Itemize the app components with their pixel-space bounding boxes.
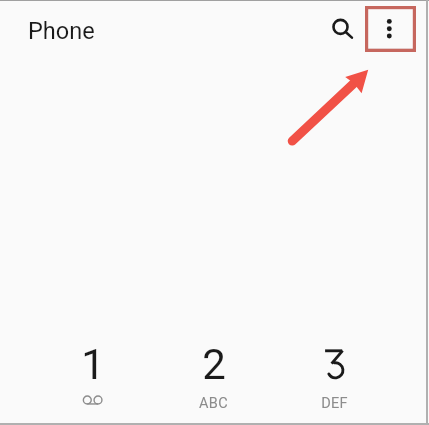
- button[interactable]: More options: [365, 6, 416, 52]
- button[interactable]: Phone: [22, 10, 100, 52]
- other: 3: [323, 340, 347, 389]
- button[interactable]: 1 voicemail: [32, 340, 153, 425]
- staticText: ABC: [199, 395, 228, 412]
- button[interactable]: 2: [153, 340, 274, 425]
- button[interactable]: 3: [274, 340, 395, 425]
- staticText: Phone: [28, 17, 95, 45]
- staticText: 2: [202, 340, 226, 389]
- staticText: DEF: [321, 395, 348, 412]
- staticText: 1: [81, 340, 105, 389]
- button[interactable]: Search: [319, 6, 363, 50]
